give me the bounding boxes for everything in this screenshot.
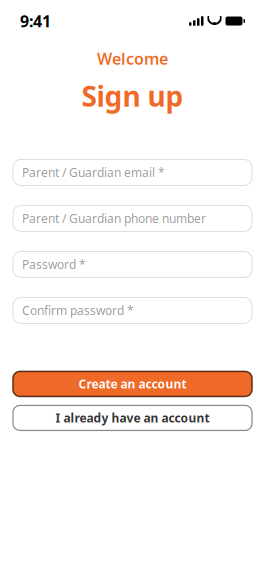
staticText: Confirm password * <box>22 302 134 318</box>
staticText: Welcome <box>97 48 168 69</box>
button[interactable]: Parent / Guardian email * <box>13 159 252 185</box>
button[interactable]: Confirm password * <box>13 297 252 323</box>
button[interactable]: Parent / Guardian phone number <box>13 205 252 231</box>
staticText: I already have an account <box>55 410 209 426</box>
button[interactable]: I already have an account <box>13 405 252 430</box>
staticText: Parent / Guardian email * <box>22 164 165 180</box>
staticText: Sign up <box>81 77 183 114</box>
staticText: 9:41 <box>20 10 51 32</box>
staticText: Password * <box>22 256 86 272</box>
button[interactable]: Password * <box>13 251 252 277</box>
button[interactable]: Create an account <box>13 371 252 396</box>
staticText: Parent / Guardian phone number <box>22 210 206 226</box>
staticText: Create an account <box>78 376 186 392</box>
